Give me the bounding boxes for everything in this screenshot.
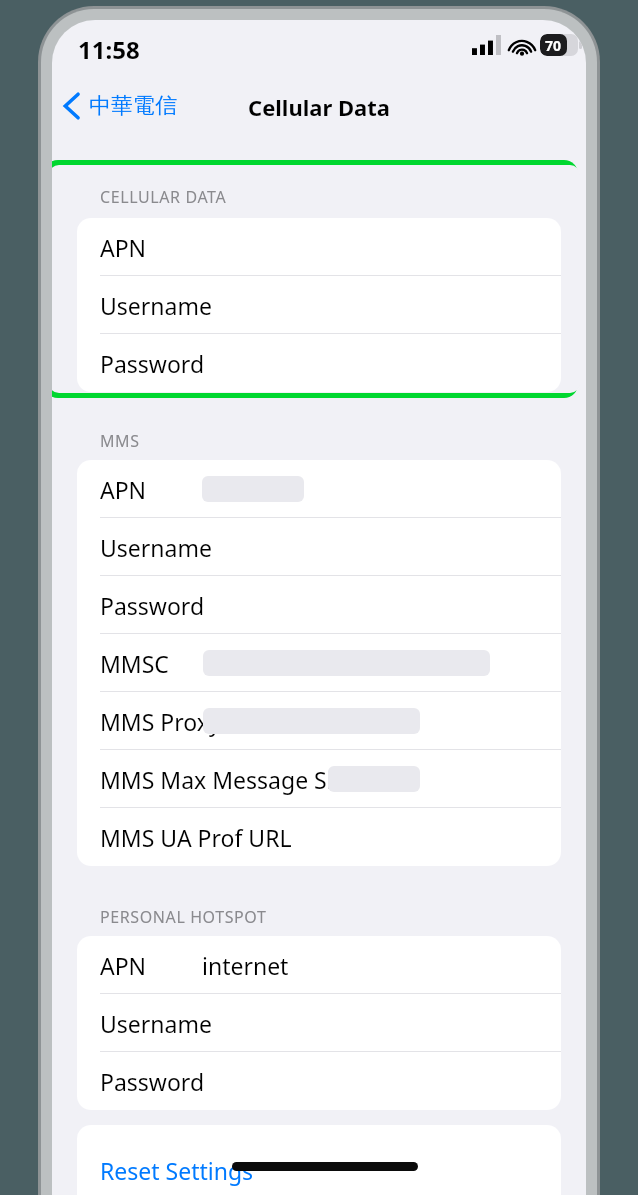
staticText: APN	[100, 950, 147, 981]
staticText: MMS UA Prof URL	[100, 822, 292, 853]
staticText: Password	[100, 1066, 205, 1097]
button[interactable]: Password	[77, 576, 561, 634]
staticText: internet	[202, 950, 289, 981]
button[interactable]: Password	[77, 334, 561, 392]
button[interactable]: MMS UA Prof URL	[77, 808, 561, 866]
staticText: Username	[100, 1008, 212, 1039]
staticText: Password	[100, 348, 205, 379]
staticText: MMS Proxy	[100, 706, 221, 737]
staticText: MMSC	[100, 648, 169, 679]
button[interactable]: Username	[77, 994, 561, 1052]
staticText: APN	[100, 232, 147, 263]
staticText: Reset Settings	[100, 1155, 254, 1186]
button[interactable]: APN	[77, 218, 561, 276]
staticText: CELLULAR DATA	[100, 186, 227, 208]
staticText: APN	[100, 474, 147, 505]
staticText: 中華電信	[89, 92, 177, 120]
button[interactable]: 中華電信	[60, 86, 181, 126]
staticText: Cellular Data	[248, 92, 390, 122]
staticText: Password	[100, 590, 205, 621]
button[interactable]: Reset Settings	[77, 1125, 561, 1195]
staticText: MMS	[100, 430, 140, 452]
button[interactable]: APN	[77, 936, 561, 994]
button[interactable]: Username	[77, 518, 561, 576]
button[interactable]: MMSC	[77, 634, 561, 692]
staticText: Username	[100, 290, 212, 321]
button[interactable]: Username	[77, 276, 561, 334]
button[interactable]: Password	[77, 1052, 561, 1110]
button[interactable]: MMS Proxy	[77, 692, 561, 750]
staticText: PERSONAL HOTSPOT	[100, 906, 267, 928]
button[interactable]: MMS Max Message Size	[77, 750, 561, 808]
staticText: Username	[100, 532, 212, 563]
staticText: MMS Max Message Size	[100, 764, 357, 795]
button[interactable]: APN	[77, 460, 561, 518]
other: Home indicator	[232, 1162, 418, 1171]
staticText: 11:58	[78, 33, 140, 66]
staticText: 70	[545, 36, 562, 55]
